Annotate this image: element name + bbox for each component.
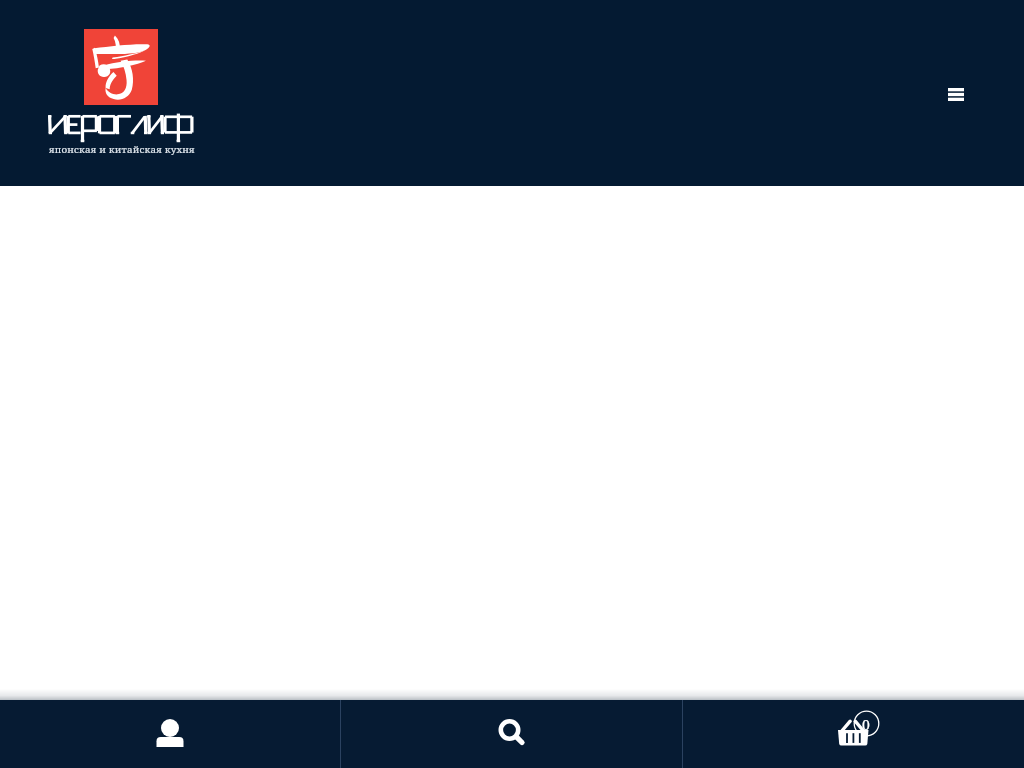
button[interactable]: Account [0, 700, 340, 768]
button[interactable]: Menu [935, 73, 976, 116]
button[interactable]: ИЕРОГЛИФ — на главную [46, 22, 198, 164]
staticText: 0 [862, 715, 870, 734]
staticText: японская и китайская кухня [49, 143, 195, 156]
button[interactable]: Search [341, 700, 682, 768]
button[interactable]: Cart, 0 items [683, 700, 1024, 768]
